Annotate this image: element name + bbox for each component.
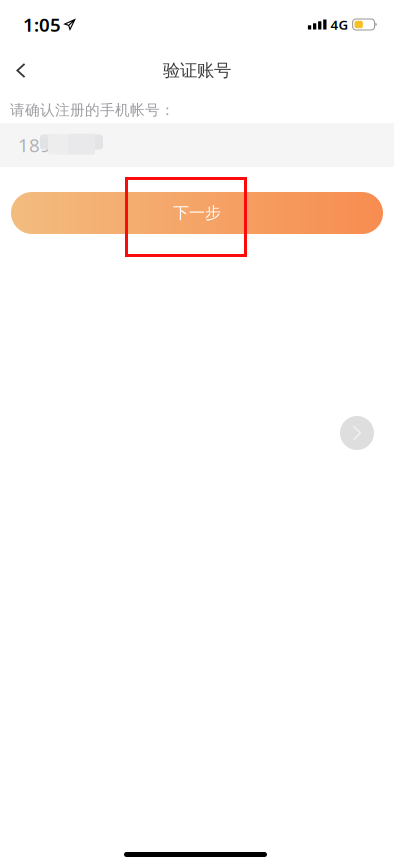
- button[interactable]: Back: [1, 47, 41, 90]
- button[interactable]: Assistive Touch: [340, 416, 374, 450]
- staticText: 189: [18, 133, 51, 157]
- staticText: 验证账号: [163, 60, 231, 81]
- button[interactable]: 下一步: [11, 192, 383, 234]
- staticText: 4G: [331, 16, 349, 33]
- staticText: 下一步: [173, 203, 221, 223]
- staticText: 请确认注册的手机帐号：: [10, 101, 175, 119]
- staticText: 1:05: [23, 12, 61, 37]
- button[interactable]: 189: [0, 123, 394, 167]
